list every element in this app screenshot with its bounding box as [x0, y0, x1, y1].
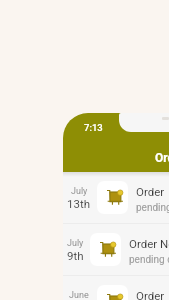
other: Order [107, 294, 123, 300]
staticText: July [71, 186, 88, 197]
staticText: 13th [67, 197, 91, 210]
button[interactable]: June [63, 276, 169, 300]
staticText: Order 3412 [136, 185, 169, 198]
staticText: pending delivery [129, 254, 169, 266]
staticText: July [67, 238, 84, 249]
staticText: June [69, 290, 89, 300]
other: Order [107, 190, 123, 205]
staticText: Order No 2290 [129, 237, 169, 250]
button[interactable]: July [63, 172, 169, 223]
button[interactable]: July [63, 224, 169, 275]
staticText: 7:13 [84, 122, 103, 133]
staticText: 9th [67, 249, 84, 262]
staticText: pending delivery [136, 202, 169, 214]
staticText: Orders [155, 151, 169, 165]
staticText: Order 1187 [136, 289, 169, 300]
other: Order [100, 242, 116, 257]
